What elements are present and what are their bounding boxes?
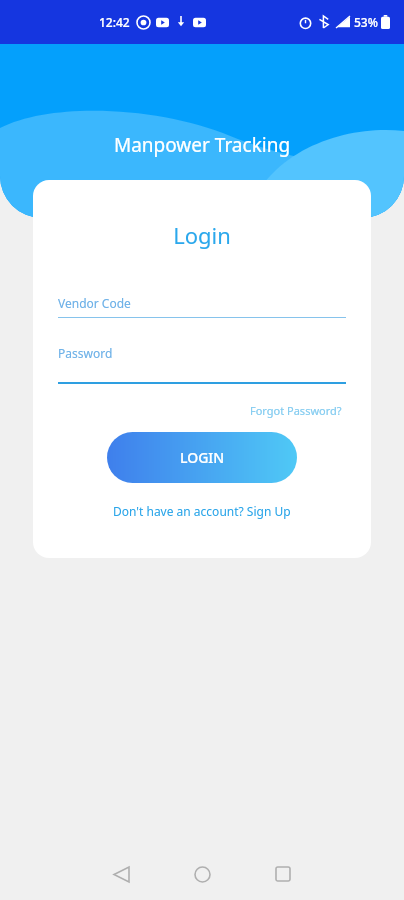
- staticText: Login: [33, 220, 371, 250]
- staticText: Forgot Password?: [250, 403, 342, 418]
- button[interactable]: Password: [58, 345, 346, 384]
- staticText: Manpower Tracking: [0, 132, 404, 158]
- staticText: Vendor Code: [58, 295, 131, 311]
- button[interactable]: LOGIN: [107, 432, 297, 483]
- button[interactable]: Back: [94, 848, 148, 900]
- button[interactable]: Recent apps: [256, 848, 310, 900]
- staticText: 53%: [354, 14, 378, 30]
- staticText: 12:42: [99, 14, 130, 30]
- button[interactable]: Vendor Code: [58, 295, 346, 318]
- staticText: Don't have an account? Sign Up: [113, 503, 291, 519]
- button[interactable]: Don't have an account? Sign Up: [105, 499, 299, 523]
- staticText: LOGIN: [180, 448, 225, 467]
- button[interactable]: Forgot Password?: [246, 399, 346, 422]
- button[interactable]: Home: [175, 848, 229, 900]
- staticText: Password: [58, 345, 113, 361]
